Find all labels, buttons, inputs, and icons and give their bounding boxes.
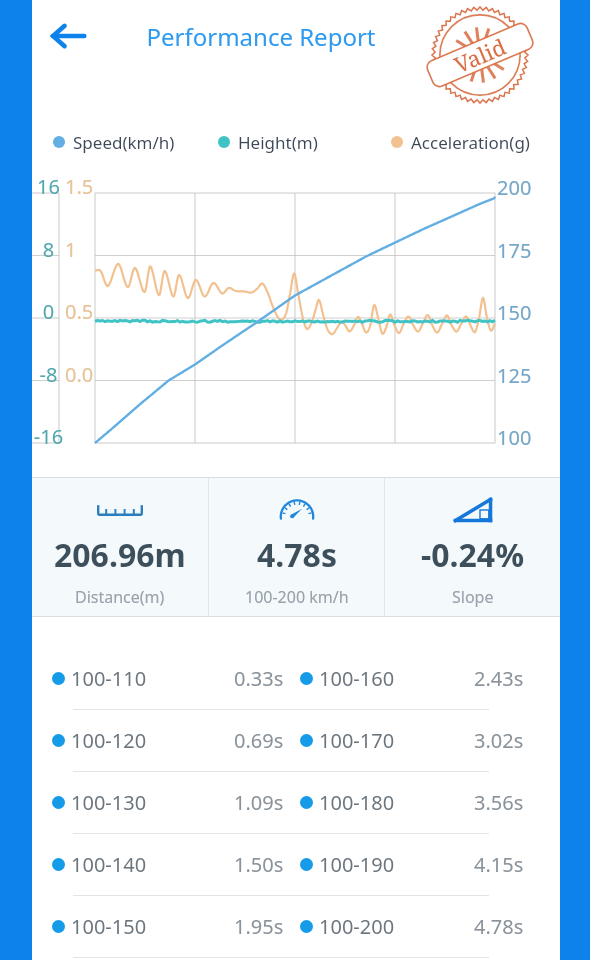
staticText: 206.96m <box>54 533 186 577</box>
staticText: 100-190 <box>319 851 395 878</box>
staticText: 4.78s <box>474 913 524 940</box>
staticText: 0.0 <box>65 361 94 388</box>
staticText: 1.50s <box>234 851 284 878</box>
staticText: Valid <box>449 31 511 79</box>
staticText: 100-200 km/h <box>245 586 349 608</box>
button[interactable]: 100-140 <box>52 836 284 892</box>
button[interactable]: Back <box>40 8 96 64</box>
staticText: 100-160 <box>319 665 395 692</box>
button[interactable]: 4.78s <box>209 477 384 617</box>
button[interactable]: 100-190 <box>300 836 524 892</box>
staticText: 100-130 <box>71 789 147 816</box>
staticText: 3.56s <box>474 789 524 816</box>
staticText: 100-140 <box>71 851 147 878</box>
staticText: 16 <box>32 173 65 200</box>
staticText: 150 <box>497 299 532 326</box>
staticText: 100 <box>497 424 532 451</box>
button[interactable]: 100-130 <box>52 774 284 830</box>
staticText: Slope <box>452 586 494 608</box>
staticText: Acceleration(g) <box>411 131 530 154</box>
staticText: Distance(m) <box>75 586 165 608</box>
staticText: Speed(km/h) <box>73 131 175 154</box>
staticText: -0.24% <box>421 533 525 577</box>
button[interactable]: 100-110 <box>52 650 284 706</box>
staticText: 100-110 <box>71 665 147 692</box>
button[interactable]: 206.96m <box>32 477 208 617</box>
staticText: 0.5 <box>65 298 94 325</box>
staticText: 0.69s <box>234 727 284 754</box>
staticText: 2.43s <box>474 665 524 692</box>
staticText: 175 <box>497 237 532 264</box>
staticText: 4.78s <box>257 533 337 577</box>
staticText: 200 <box>497 174 532 201</box>
staticText: 1 <box>65 236 77 263</box>
button[interactable]: -0.24% <box>385 477 560 617</box>
staticText: -16 <box>32 423 65 450</box>
button[interactable]: 100-180 <box>300 774 524 830</box>
staticText: -8 <box>32 361 65 388</box>
staticText: 100-150 <box>71 913 147 940</box>
staticText: 100-170 <box>319 727 395 754</box>
staticText: 1.09s <box>234 789 284 816</box>
button[interactable]: 100-170 <box>300 712 524 768</box>
staticText: 0.33s <box>234 665 284 692</box>
staticText: 125 <box>497 362 532 389</box>
staticText: 4.15s <box>474 851 524 878</box>
staticText: Performance Report <box>106 20 416 53</box>
staticText: 0 <box>32 298 65 325</box>
staticText: 8 <box>32 236 65 263</box>
staticText: 1.5 <box>65 173 94 200</box>
staticText: Height(m) <box>238 131 318 154</box>
button[interactable]: 100-160 <box>300 650 524 706</box>
button[interactable]: 100-200 <box>300 898 524 954</box>
staticText: 3.02s <box>474 727 524 754</box>
button[interactable]: 100-120 <box>52 712 284 768</box>
button[interactable]: 100-150 <box>52 898 284 954</box>
staticText: 100-200 <box>319 913 395 940</box>
staticText: 100-180 <box>319 789 395 816</box>
staticText: 1.95s <box>234 913 284 940</box>
staticText: 100-120 <box>71 727 147 754</box>
